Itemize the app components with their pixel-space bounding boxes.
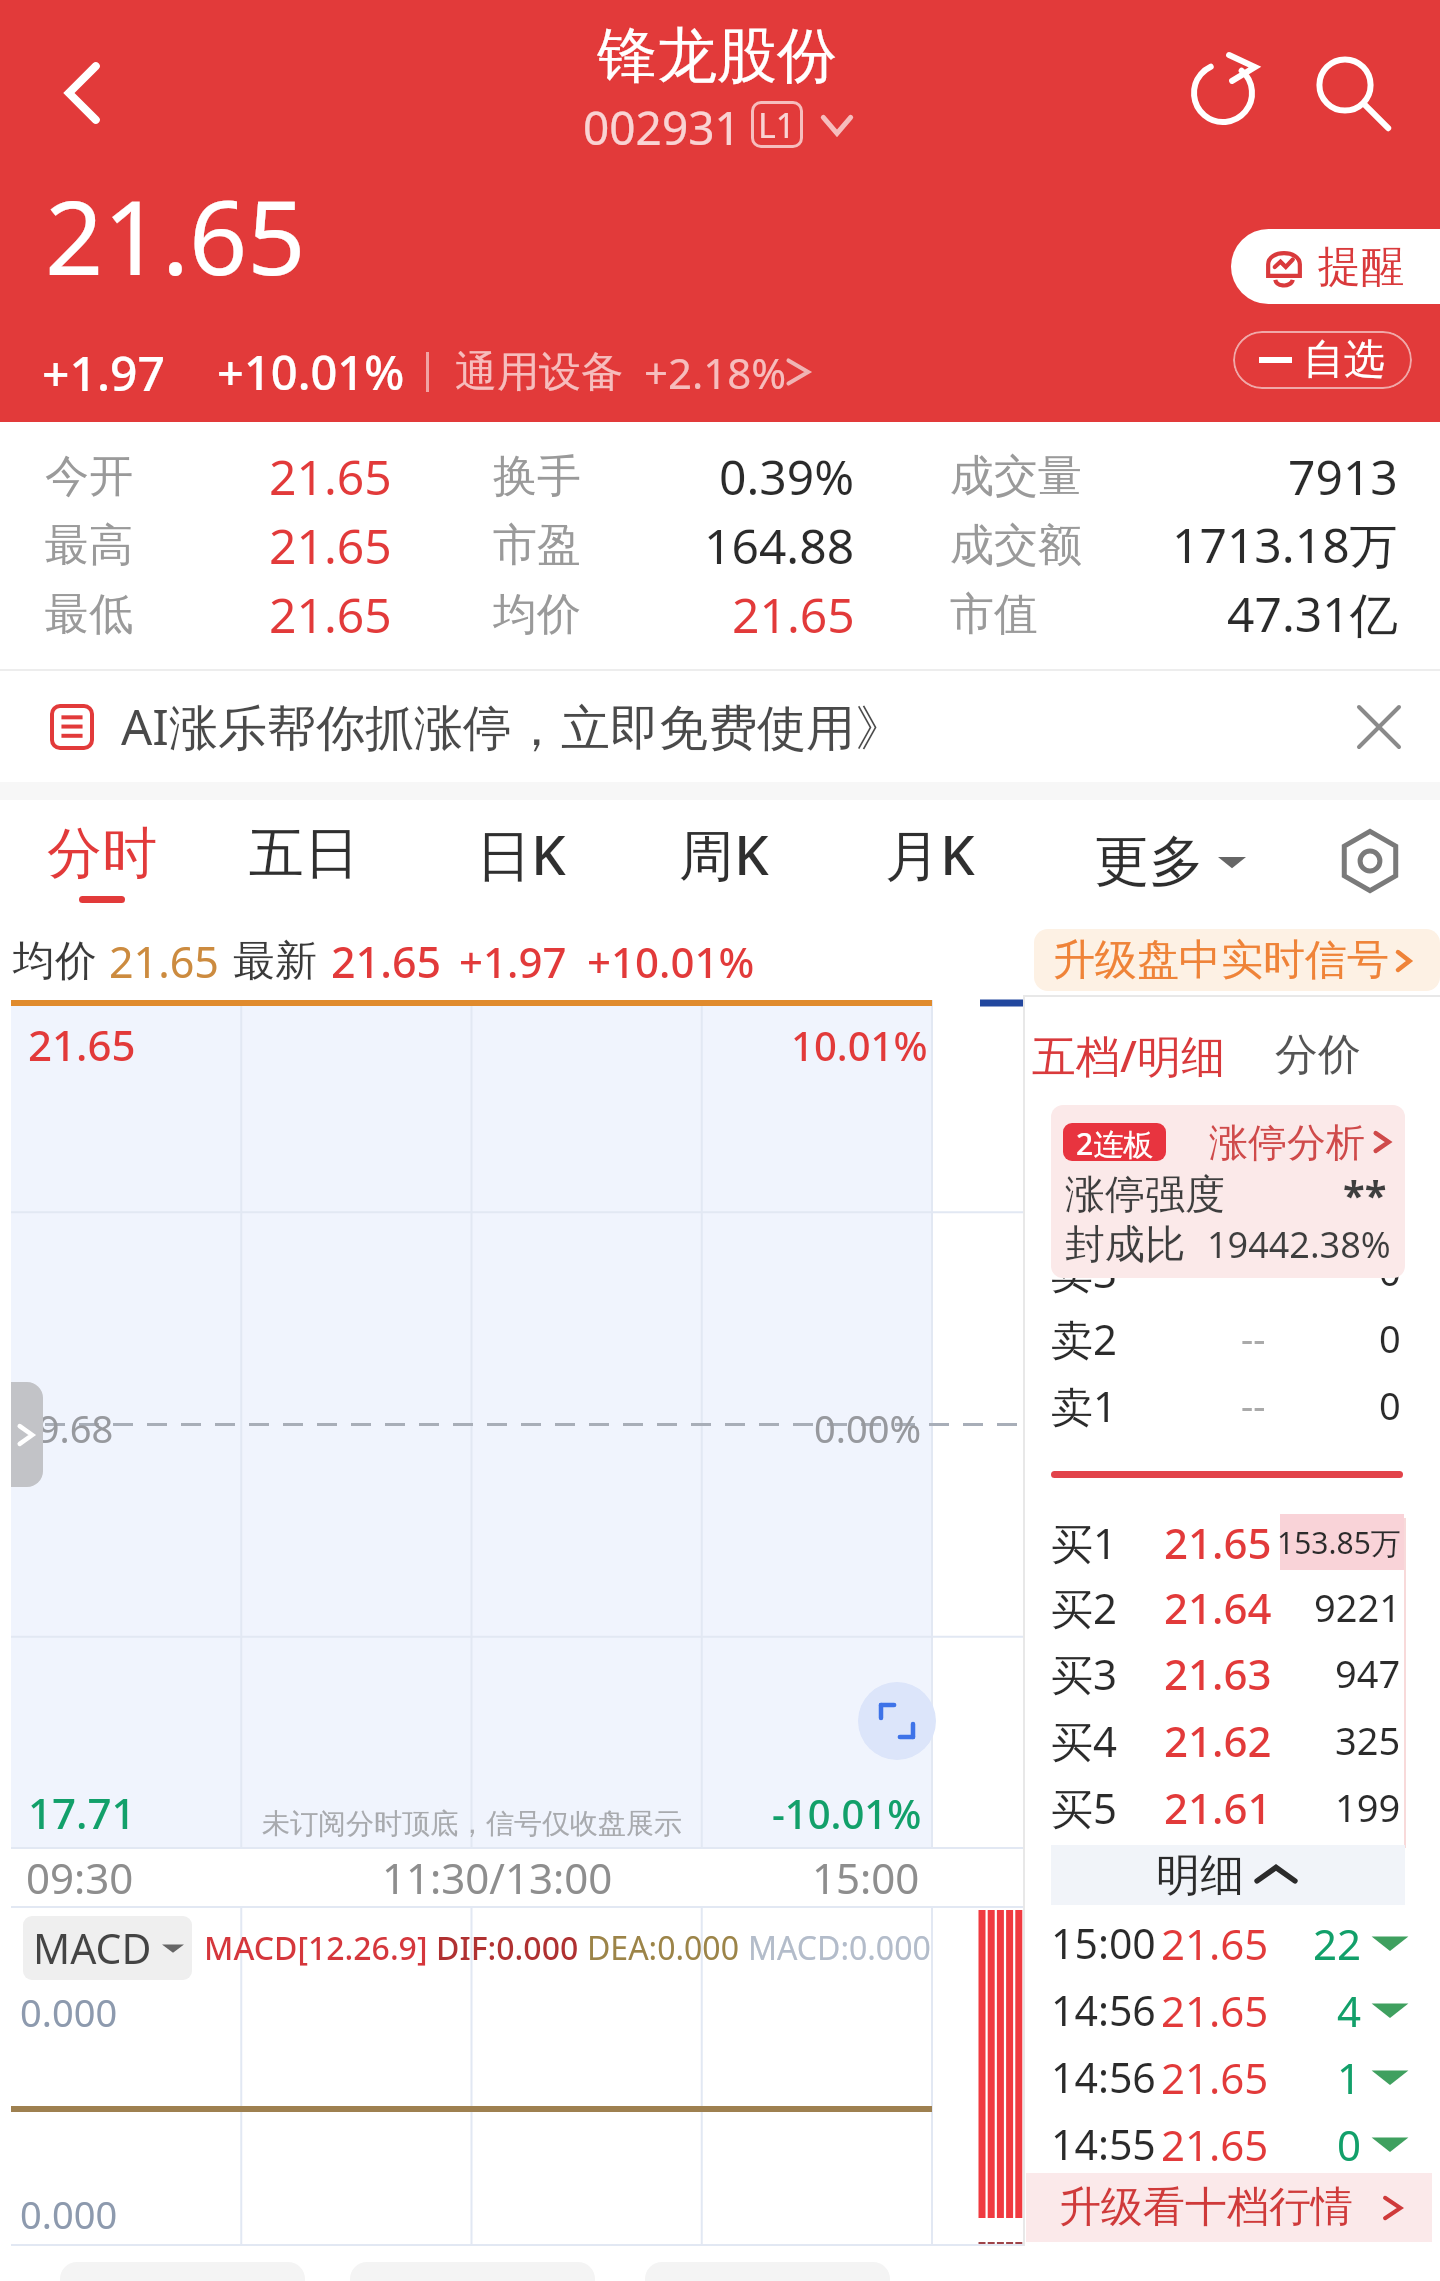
button[interactable]: Close — [1342, 690, 1416, 764]
staticText: 升级盘中实时信号 — [1053, 934, 1389, 987]
staticText: DIF:0.000 — [436, 1926, 579, 1970]
staticText: 947 — [1335, 1647, 1401, 1699]
staticText: 21.65 — [1164, 1514, 1272, 1571]
staticText: +10.01% — [587, 933, 755, 990]
button[interactable]: 日K — [431, 800, 611, 922]
staticText: 14:56 — [1051, 2049, 1156, 2105]
button[interactable]: 2连板 — [1051, 1105, 1405, 1278]
button[interactable]: 14:56 — [1051, 1976, 1406, 2044]
button[interactable]: 002931 — [578, 94, 860, 154]
staticText: 通用设备 — [455, 346, 623, 399]
button[interactable]: 14:55 — [1051, 2110, 1406, 2178]
button[interactable]: 15:00 — [1051, 1909, 1406, 1977]
staticText: 4 — [1337, 1982, 1362, 2039]
button[interactable]: AI涨乐帮你抓涨停，立即免费使用》 — [0, 671, 1440, 782]
button[interactable]: 买1 — [1051, 1508, 1404, 1576]
button[interactable]: 更多 — [1060, 800, 1280, 922]
staticText: 买1 — [1051, 1514, 1118, 1571]
staticText: +10.01% — [217, 340, 405, 404]
button[interactable]: 买2 — [1051, 1573, 1404, 1641]
button[interactable]: Search — [1290, 30, 1416, 156]
staticText: 21.65 — [1161, 1915, 1269, 1972]
staticText: 明细 — [1156, 1848, 1244, 1903]
button[interactable]: MACD — [23, 1916, 192, 1980]
staticText: 21.65 — [269, 582, 392, 647]
button[interactable]: 周K — [634, 800, 814, 922]
staticText: 卖2 — [1051, 1310, 1118, 1367]
button[interactable]: 买4 — [1051, 1706, 1404, 1774]
staticText: 21.65 — [1161, 2049, 1269, 2106]
staticText: 买4 — [1051, 1712, 1118, 1769]
staticText: 涨停分析 — [1209, 1118, 1365, 1167]
staticText: ** — [1343, 1167, 1387, 1221]
staticText: 卖1 — [1051, 1377, 1118, 1434]
button[interactable]: 自选 — [1233, 331, 1412, 389]
button[interactable]: 分价 — [1275, 1028, 1361, 1082]
button[interactable]: 分时 — [12, 800, 192, 922]
staticText: 22 — [1313, 1915, 1362, 1972]
button[interactable]: 卖3 — [1051, 1237, 1404, 1305]
button[interactable]: Back — [23, 33, 143, 153]
button[interactable]: 提醒 — [1231, 229, 1440, 304]
staticText: 09:30 — [26, 1849, 134, 1906]
button[interactable]: 升级盘中实时信号 — [1034, 929, 1440, 991]
staticText: 卖3 — [1051, 1243, 1118, 1300]
staticText: 2连板 — [1076, 1123, 1154, 1161]
staticText: 五日 — [249, 819, 359, 888]
staticText: 21.65 — [269, 513, 392, 578]
staticText: 7913 — [1288, 444, 1398, 509]
staticText: 0 — [1379, 1312, 1401, 1364]
button[interactable]: 五档/明细 — [1032, 1025, 1225, 1085]
staticText: 21.62 — [1164, 1712, 1272, 1769]
staticText: 17.71 — [28, 1784, 136, 1841]
staticText: 21.64 — [1164, 1579, 1272, 1636]
staticText: 325 — [1335, 1714, 1401, 1766]
staticText: 47.31亿 — [1227, 581, 1398, 647]
staticText: 锋龙股份 — [597, 18, 837, 92]
staticText: 分时 — [47, 819, 157, 888]
staticText: -- — [1241, 1379, 1266, 1431]
button[interactable]: 买3 — [1051, 1639, 1404, 1707]
button[interactable]: 卖1 — [1051, 1371, 1404, 1439]
staticText: 15:00 — [1051, 1915, 1156, 1971]
staticText: 买3 — [1051, 1645, 1118, 1702]
staticText: 成交量 — [950, 449, 1082, 504]
staticText: 0 — [1337, 2116, 1362, 2173]
staticText: 升级看十档行情 — [1059, 2181, 1353, 2234]
button[interactable]: Refresh — [1160, 30, 1286, 156]
button[interactable]: 月K — [840, 800, 1020, 922]
staticText: +1.97 — [42, 340, 165, 404]
staticText: 21.65 — [732, 582, 855, 647]
button[interactable]: Expand panel — [11, 1382, 43, 1487]
staticText: 9221 — [1314, 1581, 1401, 1633]
button[interactable]: 买5 — [1051, 1773, 1404, 1841]
staticText: 19.68 — [16, 1402, 114, 1454]
staticText: 21.65 — [1161, 1982, 1269, 2039]
button[interactable]: Chart settings — [1300, 800, 1440, 922]
staticText: 最低 — [45, 587, 133, 642]
button[interactable]: 卖2 — [1051, 1304, 1404, 1372]
staticText: 0.00% — [814, 1402, 921, 1454]
staticText: +2.18% — [644, 344, 787, 401]
staticText: 均价 — [13, 935, 97, 988]
button[interactable]: 14:56 — [1051, 2043, 1406, 2111]
staticText: DEA:0.000 — [587, 1926, 739, 1970]
button[interactable]: 锋龙股份 — [590, 14, 846, 88]
staticText: 提醒 — [1318, 240, 1404, 294]
button[interactable]: Fullscreen — [858, 1682, 936, 1760]
button[interactable]: 升级看十档行情 — [1026, 2173, 1432, 2242]
staticText: L1 — [758, 102, 796, 148]
staticText: MACD — [33, 1920, 152, 1976]
staticText: 11:30/13:00 — [382, 1849, 613, 1906]
staticText: 成交额 — [950, 518, 1082, 573]
staticText: AI涨乐帮你抓涨停，立即免费使用》 — [121, 693, 904, 760]
staticText: 日K — [476, 816, 566, 891]
staticText: 换手 — [493, 449, 581, 504]
staticText: 买5 — [1051, 1779, 1118, 1836]
button[interactable]: 明细 — [1051, 1845, 1405, 1905]
staticText: 21.65 — [28, 1016, 136, 1073]
button[interactable]: 五日 — [214, 800, 394, 922]
